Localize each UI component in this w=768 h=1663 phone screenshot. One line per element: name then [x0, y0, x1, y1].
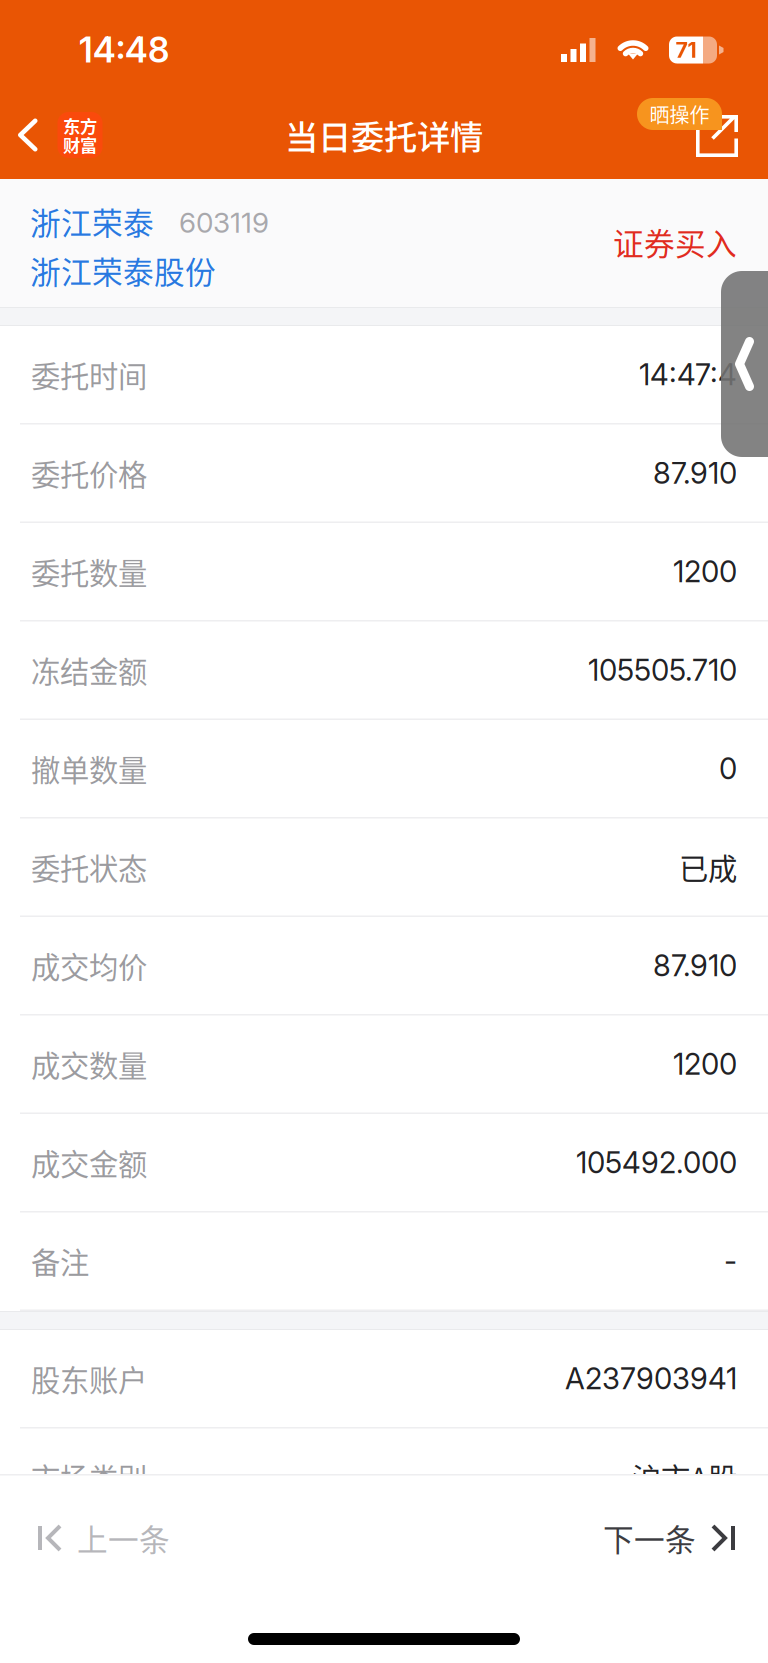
staticText: 委托时间	[31, 353, 147, 396]
staticText: 603119	[179, 206, 269, 239]
staticText: 105505.710	[588, 652, 737, 688]
staticText: 当日委托详情	[285, 111, 483, 159]
staticText: 87.910	[653, 455, 737, 491]
staticText: 上一条	[77, 1516, 170, 1560]
staticText: 晒操作	[649, 99, 709, 128]
staticText: 证券买入	[613, 220, 737, 264]
staticText: 沪市A股	[632, 1456, 737, 1498]
staticText: 财富	[63, 132, 97, 157]
staticText: 14:47:4	[639, 357, 737, 392]
staticText: 冻结金额	[31, 649, 147, 691]
staticText: 成交金额	[31, 1141, 147, 1184]
button[interactable]: 下一条	[384, 1475, 768, 1600]
staticText: 87.910	[653, 948, 737, 983]
staticText: 委托状态	[31, 846, 147, 888]
button[interactable]: 返回 东方财富	[0, 110, 150, 160]
staticText: 市场类别	[31, 1456, 147, 1498]
button[interactable]: Back	[721, 271, 768, 457]
staticText: A237903941	[565, 1361, 737, 1396]
staticText: 委托数量	[31, 550, 147, 593]
staticText: 105492.000	[576, 1145, 737, 1180]
staticText: 下一条	[603, 1516, 696, 1560]
staticText: 委托价格	[31, 452, 147, 494]
staticText: 股东账户	[31, 1357, 147, 1400]
staticText: 71	[675, 37, 696, 63]
button[interactable]: Share	[658, 96, 768, 182]
staticText: 成交均价	[31, 944, 147, 987]
staticText: 备注	[31, 1240, 89, 1282]
staticText: 成交数量	[31, 1043, 147, 1085]
staticText: 东方	[63, 113, 97, 138]
staticText: 0	[719, 751, 737, 786]
staticText: 1200	[673, 554, 737, 589]
staticText: 撤单数量	[31, 747, 147, 790]
staticText: -	[724, 1243, 737, 1279]
staticText: 已成	[679, 846, 737, 888]
staticText: 浙江荣泰股份	[30, 248, 216, 293]
staticText: 14:48	[79, 29, 169, 71]
staticText: 浙江荣泰	[30, 199, 154, 244]
button[interactable]: 上一条	[0, 1475, 384, 1600]
staticText: 1200	[673, 1046, 737, 1082]
